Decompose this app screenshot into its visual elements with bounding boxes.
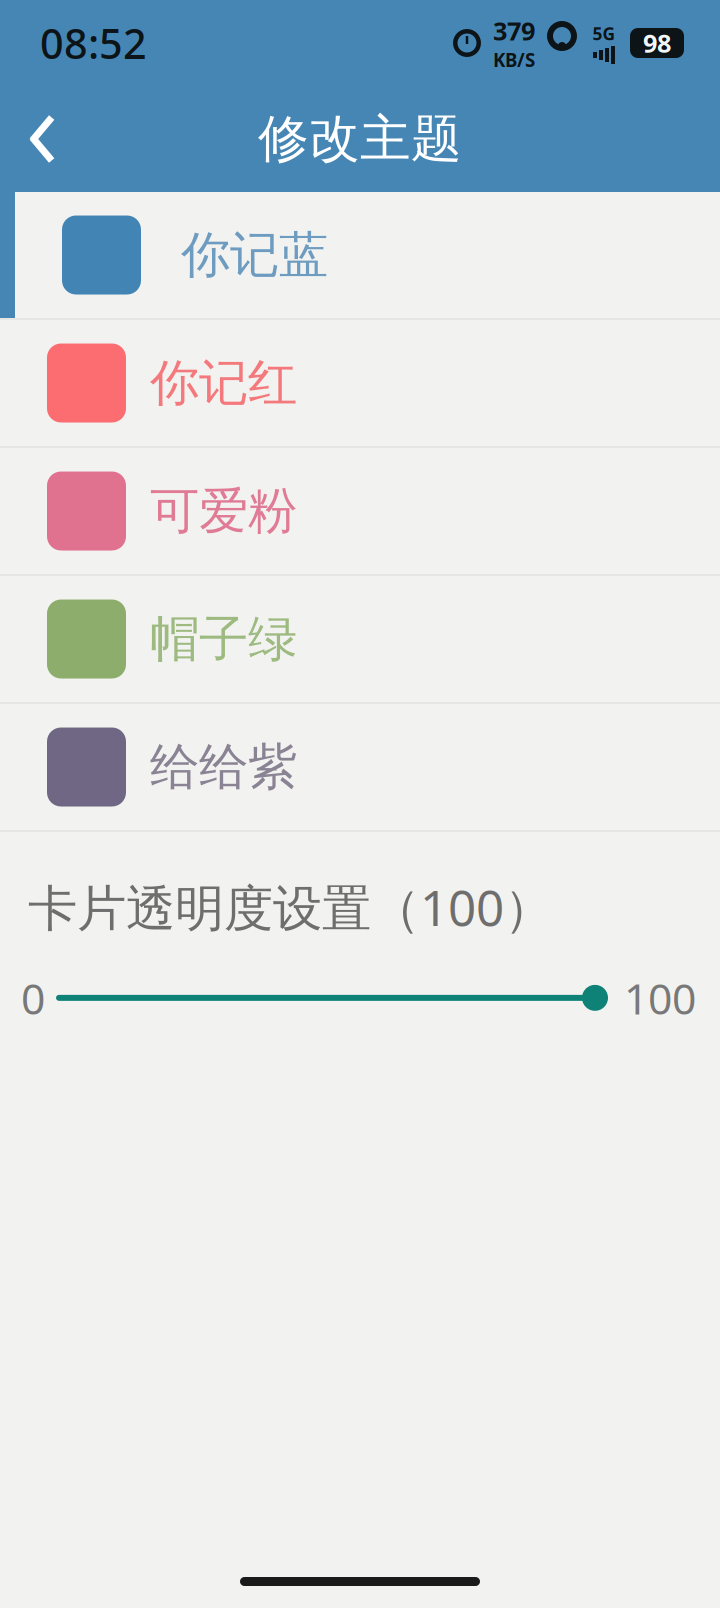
staticText: 100 xyxy=(624,969,696,1026)
staticText: 你记蓝 xyxy=(181,225,328,285)
staticText: KB/S xyxy=(493,47,535,72)
staticText: 帽子绿 xyxy=(150,609,297,669)
staticText: 5G xyxy=(592,22,615,45)
staticText: 98 xyxy=(643,26,671,60)
staticText: 可爱粉 xyxy=(150,481,297,541)
staticText: 0 xyxy=(21,969,45,1026)
staticText: 修改主题 xyxy=(258,108,462,170)
staticText: 08:52 xyxy=(40,16,147,70)
button[interactable]: 返回 xyxy=(0,89,84,189)
button[interactable]: 给给紫 xyxy=(0,704,720,830)
staticText: 你记红 xyxy=(150,353,297,413)
button[interactable]: 你记蓝 xyxy=(0,192,720,318)
staticText: 379 xyxy=(493,14,535,47)
staticText: 卡片透明度设置（100） xyxy=(28,874,553,939)
button[interactable]: 可爱粉 xyxy=(0,448,720,574)
staticText: 给给紫 xyxy=(150,737,297,797)
button[interactable]: 你记红 xyxy=(0,320,720,446)
button[interactable]: 帽子绿 xyxy=(0,576,720,702)
